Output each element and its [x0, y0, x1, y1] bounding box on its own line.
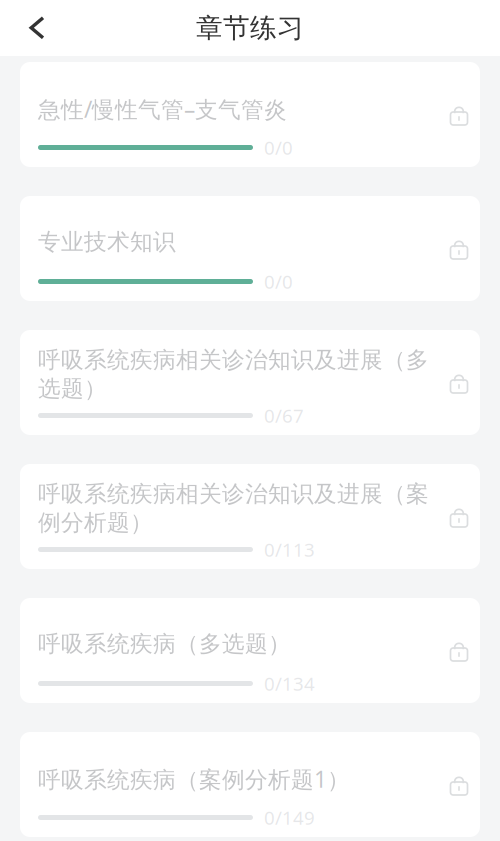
staticText: 0/149	[264, 805, 315, 830]
button[interactable]: Back	[0, 6, 59, 50]
staticText: 急性/慢性气管–支气管炎	[38, 94, 287, 124]
button[interactable]: 呼吸系统疾病相关诊治知识及进展（案例分析题）	[20, 464, 480, 569]
staticText: 0/0	[264, 135, 293, 160]
button[interactable]: 呼吸系统疾病相关诊治知识及进展（多选题）	[20, 330, 480, 435]
button[interactable]: 专业技术知识	[20, 196, 480, 301]
button[interactable]: 呼吸系统疾病（多选题）	[20, 598, 480, 703]
staticText: 呼吸系统疾病相关诊治知识及进展（案例分析题）	[38, 480, 429, 537]
button[interactable]: 呼吸系统疾病（案例分析题1）	[20, 732, 480, 837]
staticText: 专业技术知识	[38, 228, 176, 256]
staticText: 呼吸系统疾病（多选题）	[38, 630, 291, 658]
staticText: 呼吸系统疾病（案例分析题1）	[38, 764, 350, 794]
staticText: 章节练习	[196, 12, 304, 44]
staticText: 呼吸系统疾病相关诊治知识及进展（多选题）	[38, 346, 429, 403]
button[interactable]: 急性/慢性气管–支气管炎	[20, 62, 480, 167]
staticText: 0/134	[264, 671, 315, 696]
staticText: 0/0	[264, 269, 293, 294]
staticText: 0/113	[264, 537, 315, 562]
staticText: 0/67	[264, 403, 304, 428]
